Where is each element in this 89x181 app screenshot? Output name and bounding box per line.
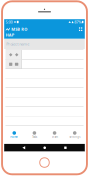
staticText: Team (52, 135, 58, 139)
button[interactable]: Home (43, 146, 46, 149)
button[interactable]: Team (44, 131, 65, 139)
staticText: Tasks (32, 135, 37, 139)
staticText: 5:00 (6, 19, 13, 25)
staticText: Project name (6, 41, 29, 46)
staticText: Home (10, 135, 18, 139)
button[interactable]: Back (22, 146, 25, 149)
staticText: MSB RO (11, 26, 27, 32)
staticText: Settings (69, 135, 80, 139)
button[interactable]: Home (4, 131, 24, 139)
button[interactable]: Settings (65, 131, 85, 139)
button[interactable]: More options (78, 26, 83, 32)
button[interactable]: Recents (64, 146, 67, 149)
button[interactable]: Tasks (24, 131, 44, 139)
staticText: 87% (74, 19, 81, 25)
staticText: HAP (6, 32, 14, 37)
